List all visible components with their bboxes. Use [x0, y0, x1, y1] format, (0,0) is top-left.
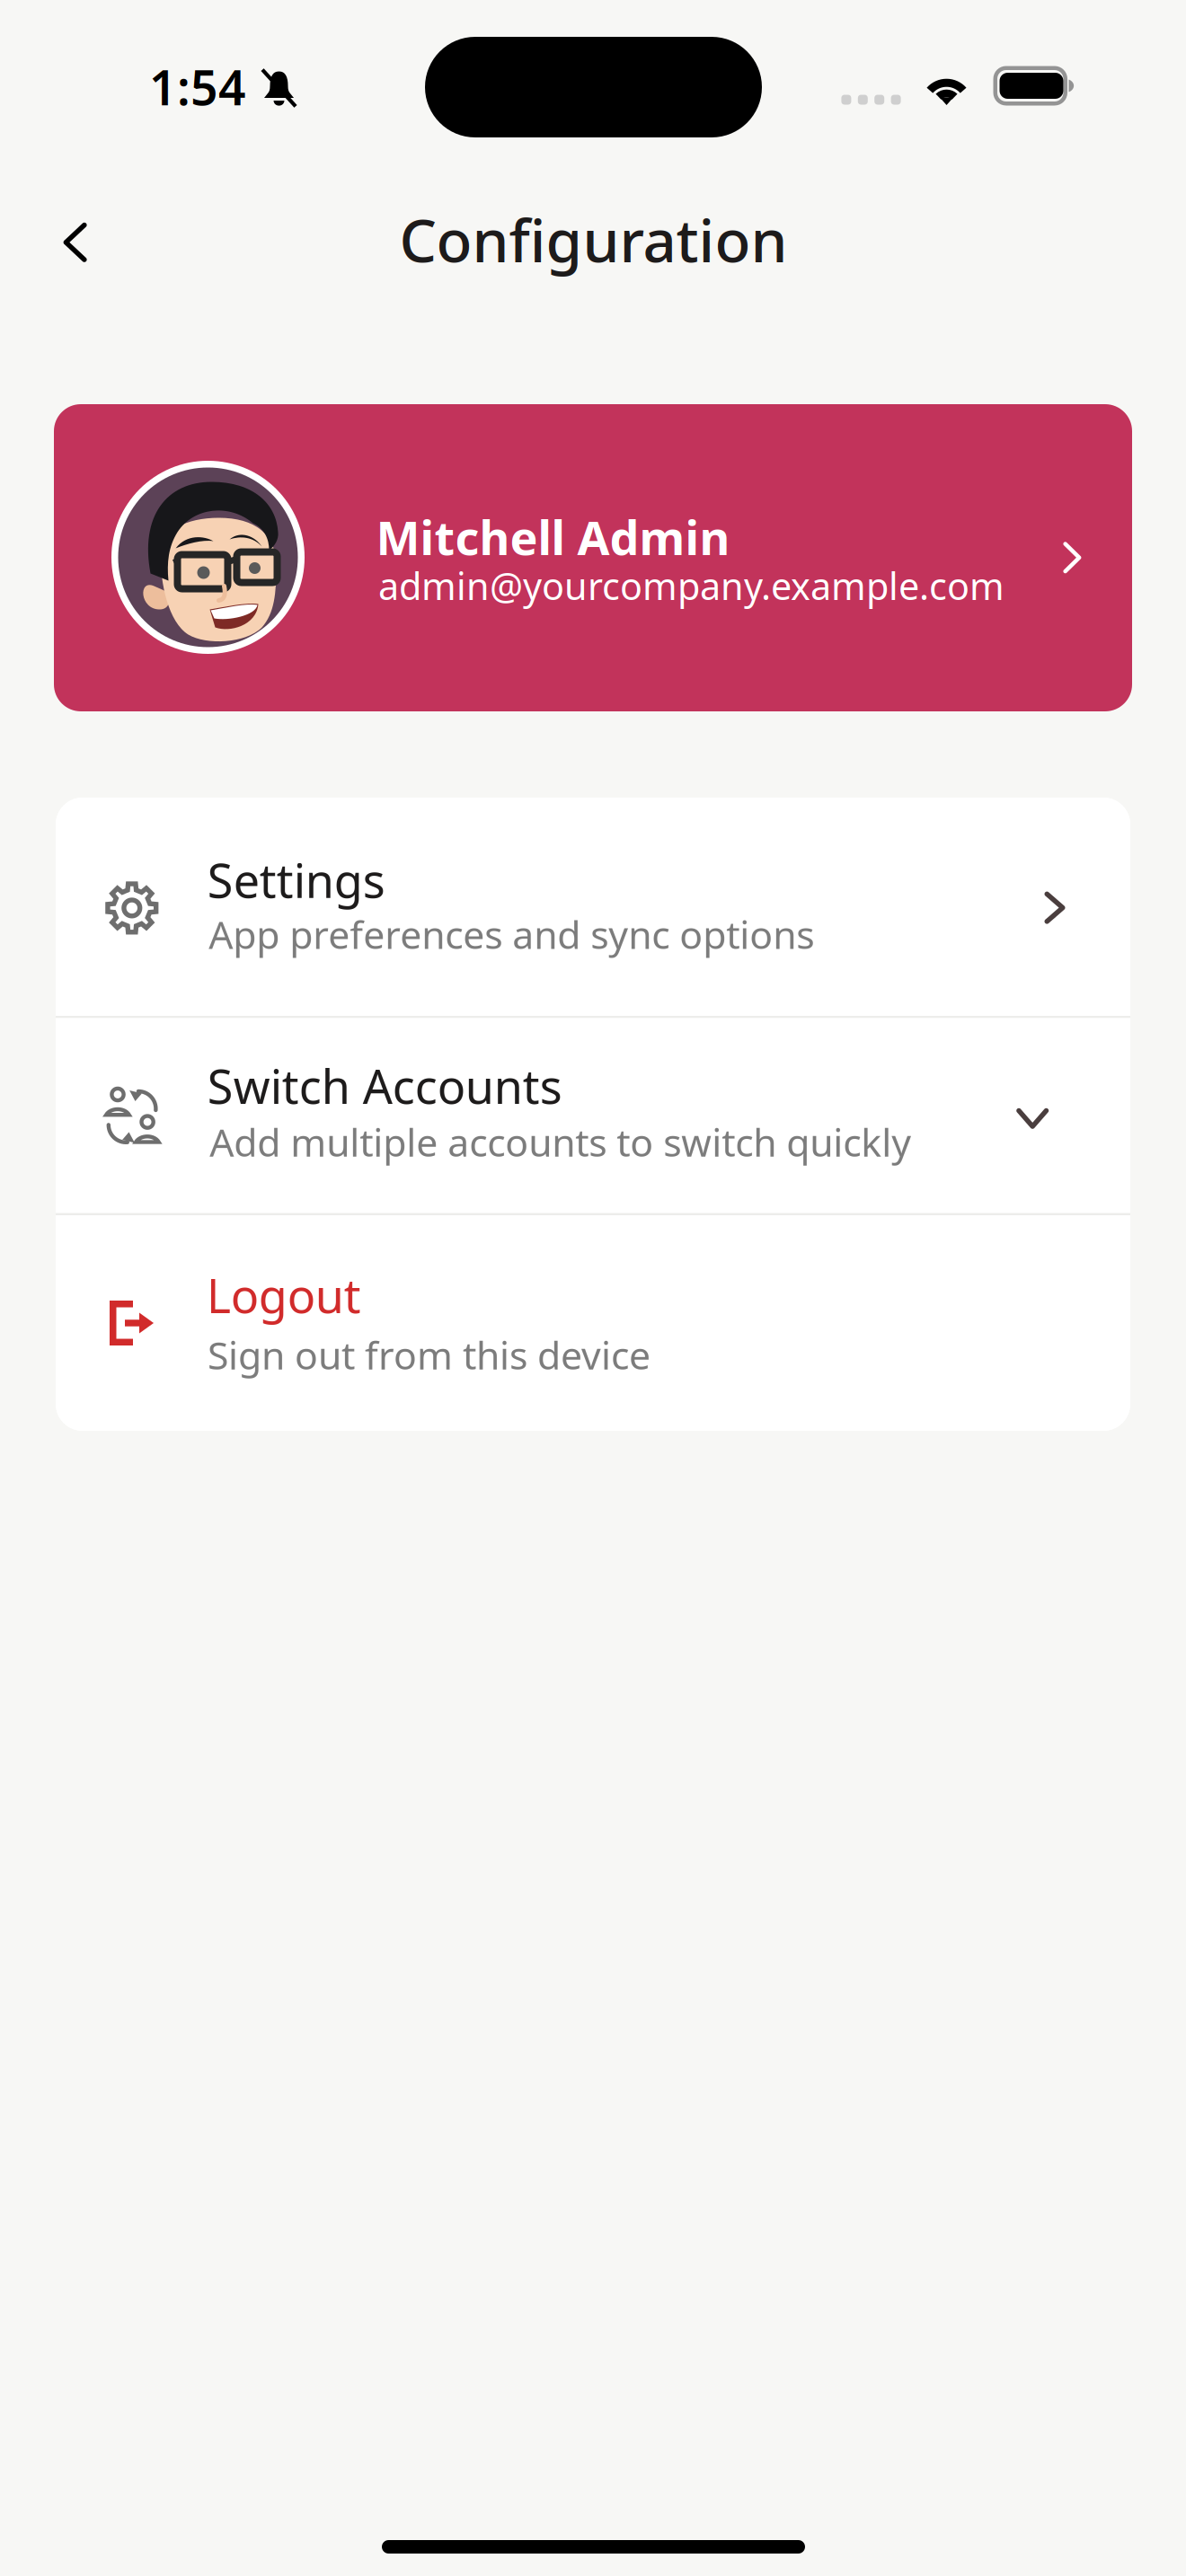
staticText: Settings [207, 848, 385, 912]
staticText: Switch Accounts [207, 1054, 562, 1118]
staticText: 1:54 [149, 54, 246, 119]
staticText: Mitchell Admin [376, 505, 730, 569]
staticText: Add multiple accounts to switch quickly [210, 1116, 911, 1168]
button[interactable]: Back [44, 199, 130, 286]
button[interactable]: Settings [56, 798, 1130, 1016]
staticText: Configuration [399, 199, 788, 279]
staticText: Logout [206, 1263, 361, 1327]
staticText: admin@yourcompany.example.com [378, 560, 1005, 611]
button[interactable]: Switch Accounts [56, 1018, 1130, 1213]
button[interactable]: Logout [56, 1215, 1130, 1431]
button[interactable]: Mitchell Admin [54, 404, 1132, 711]
staticText: Sign out from this device [208, 1329, 651, 1381]
staticText: App preferences and sync options [209, 908, 814, 960]
